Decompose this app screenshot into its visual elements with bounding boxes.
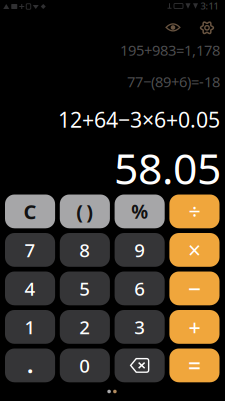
staticText: C bbox=[24, 198, 37, 225]
staticText: + bbox=[188, 313, 200, 341]
button[interactable]: − bbox=[169, 271, 219, 305]
button[interactable]: Delete bbox=[115, 348, 165, 382]
button[interactable]: + bbox=[169, 310, 219, 344]
staticText: ( ) bbox=[76, 198, 93, 225]
staticText: 2 bbox=[79, 314, 90, 339]
button[interactable]: 1 bbox=[5, 310, 55, 344]
button[interactable]: = bbox=[169, 348, 219, 382]
staticText: 3 bbox=[134, 314, 145, 339]
button[interactable]: C bbox=[5, 194, 55, 228]
staticText: 6 bbox=[134, 276, 145, 301]
button[interactable]: Calculation history bbox=[160, 14, 186, 40]
staticText: = bbox=[188, 350, 201, 380]
button[interactable]: 2 bbox=[60, 310, 110, 344]
button[interactable]: 5 bbox=[60, 271, 110, 305]
staticText: 0 bbox=[79, 353, 90, 378]
staticText: 7 bbox=[25, 237, 36, 262]
button[interactable]: 0 bbox=[60, 348, 110, 382]
button[interactable]: 6 bbox=[115, 271, 165, 305]
button[interactable]: 3 bbox=[115, 310, 165, 344]
button[interactable]: 8 bbox=[60, 233, 110, 267]
button[interactable]: ( ) bbox=[60, 194, 110, 228]
staticText: 12+64−3×6+0.05 bbox=[58, 105, 220, 134]
staticText: − bbox=[188, 273, 201, 303]
button[interactable]: Settings bbox=[194, 15, 220, 41]
staticText: % bbox=[131, 199, 148, 224]
button[interactable]: ÷ bbox=[169, 194, 219, 228]
staticText: 3:11 bbox=[200, 0, 218, 12]
staticText: 77−(89+6)=-18 bbox=[127, 72, 220, 91]
staticText: 195+983=1,178 bbox=[120, 40, 220, 60]
button[interactable]: 4 bbox=[5, 271, 55, 305]
staticText: 8 bbox=[79, 237, 90, 262]
staticText: 58.05 bbox=[114, 140, 221, 196]
staticText: 5 bbox=[79, 276, 90, 301]
button[interactable]: . bbox=[5, 348, 55, 382]
button[interactable]: % bbox=[115, 194, 165, 228]
staticText: ÷ bbox=[188, 197, 200, 225]
staticText: . bbox=[27, 349, 33, 379]
staticText: 1 bbox=[25, 314, 36, 339]
button[interactable]: 7 bbox=[5, 233, 55, 267]
staticText: 9 bbox=[134, 237, 145, 262]
button[interactable]: 9 bbox=[115, 233, 165, 267]
staticText: × bbox=[188, 235, 201, 265]
button[interactable]: × bbox=[169, 233, 219, 267]
staticText: 4 bbox=[25, 276, 36, 301]
